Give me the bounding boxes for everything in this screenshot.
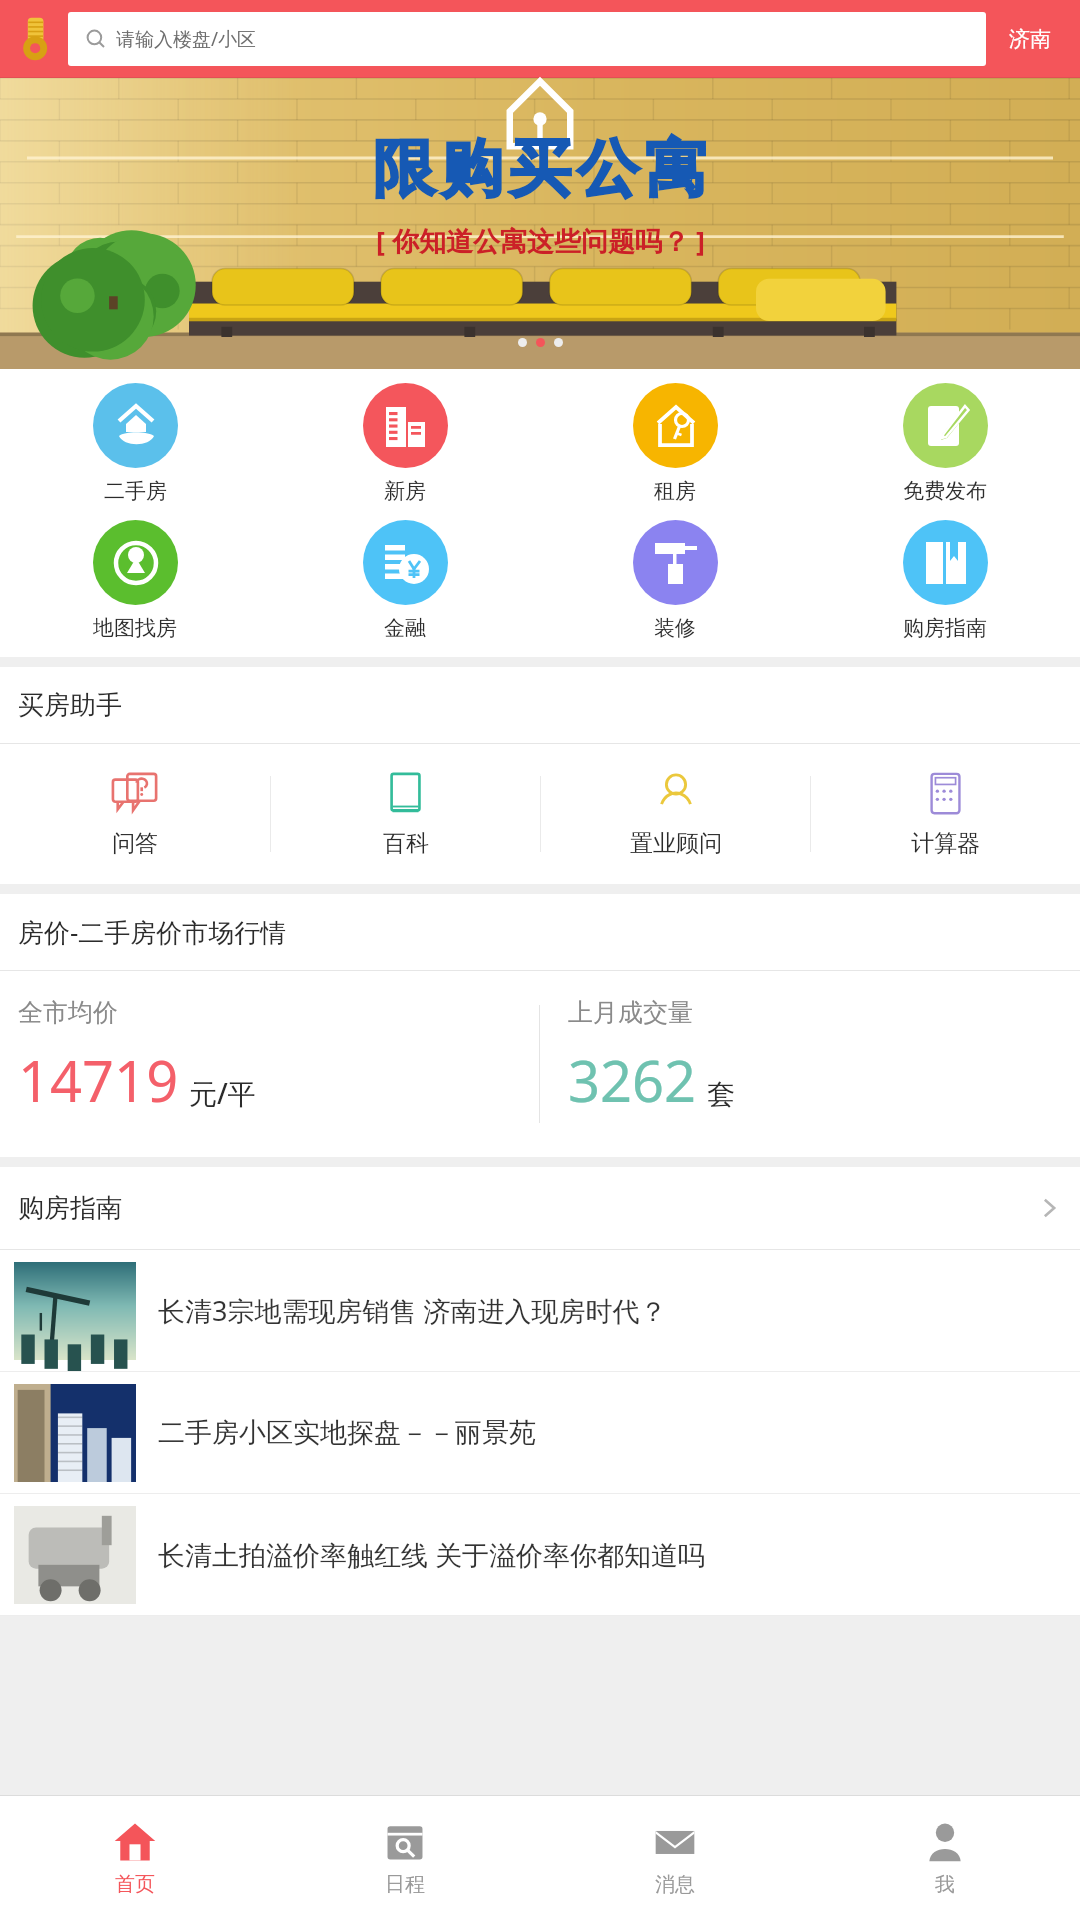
button[interactable]: 上月成交量 [540, 971, 1080, 1157]
staticText: 请输入楼盘/小区 [116, 26, 257, 52]
button[interactable]: 新房 [270, 377, 540, 510]
staticText: 问答 [112, 829, 158, 858]
button[interactable]: 购房指南 [810, 514, 1080, 647]
staticText: 房价-二手房价市场行情 [18, 914, 287, 950]
staticText: 购房指南 [18, 1192, 122, 1225]
staticText: 长清土拍溢价率触红线 关于溢价率你都知道吗 [158, 1536, 706, 1573]
button[interactable]: 免费发布 [810, 377, 1080, 510]
staticText: 金融 [384, 615, 426, 641]
button[interactable]: 计算器 [811, 744, 1080, 884]
staticText: 14719 [18, 1042, 179, 1118]
staticText: 元/平 [189, 1074, 256, 1112]
staticText: 免费发布 [903, 478, 987, 504]
button[interactable]: Logo [6, 8, 68, 70]
staticText: 买房助手 [18, 689, 122, 722]
button[interactable]: 置业顾问 [541, 744, 810, 884]
staticText: 二手房小区实地探盘－－丽景苑 [158, 1416, 536, 1450]
staticText: 置业顾问 [630, 829, 722, 858]
button[interactable]: 请输入楼盘/小区 [68, 12, 986, 66]
button[interactable]: 租房 [540, 377, 810, 510]
button[interactable]: 我 [810, 1796, 1080, 1920]
button[interactable]: 金融 [270, 514, 540, 647]
button[interactable]: 全市均价 [0, 971, 539, 1157]
staticText: 装修 [654, 615, 696, 641]
staticText: 二手房 [104, 478, 167, 504]
staticText: [ 你知道公寓这些问题吗？ ] [376, 222, 705, 259]
button[interactable]: 购房指南 [0, 1167, 1080, 1249]
button[interactable]: 二手房 [0, 377, 270, 510]
staticText: 计算器 [911, 829, 980, 858]
staticText: 长清3宗地需现房销售 济南进入现房时代？ [158, 1292, 667, 1329]
button[interactable]: 首页 [0, 1796, 270, 1920]
staticText: 购房指南 [903, 615, 987, 641]
staticText: 套 [707, 1077, 735, 1112]
staticText: 新房 [384, 478, 426, 504]
button[interactable]: 装修 [540, 514, 810, 647]
staticText: 限购买公寓 [370, 130, 710, 208]
staticText: 首页 [115, 1872, 155, 1897]
staticText: 百科 [383, 829, 429, 858]
button[interactable]: 问答 [0, 744, 270, 884]
button[interactable]: 长清3宗地需现房销售 济南进入现房时代？ [0, 1250, 1080, 1371]
staticText: 3262 [568, 1042, 697, 1118]
staticText: 上月成交量 [568, 997, 693, 1028]
button[interactable]: 百科 [271, 744, 540, 884]
button[interactable]: 二手房小区实地探盘－－丽景苑 [0, 1372, 1080, 1493]
staticText: 全市均价 [18, 997, 118, 1028]
staticText: 我 [935, 1872, 955, 1897]
staticText: 消息 [655, 1872, 695, 1897]
staticText: 地图找房 [93, 615, 177, 641]
staticText: 日程 [385, 1872, 425, 1897]
button[interactable]: 地图找房 [0, 514, 270, 647]
button[interactable]: 长清土拍溢价率触红线 关于溢价率你都知道吗 [0, 1494, 1080, 1615]
button[interactable]: 济南 [986, 0, 1074, 78]
staticText: 济南 [1009, 26, 1051, 52]
button[interactable]: 日程 [270, 1796, 540, 1920]
button[interactable]: 消息 [540, 1796, 810, 1920]
staticText: 租房 [654, 478, 696, 504]
